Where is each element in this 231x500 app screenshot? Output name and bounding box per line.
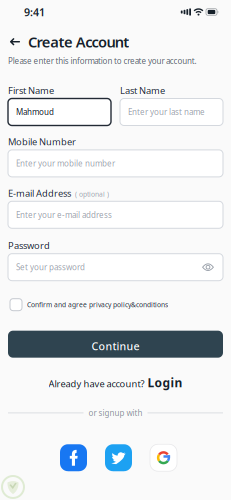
button[interactable]: Back [8,35,22,49]
staticText: 9:41 [24,5,45,19]
staticText: Confirm and agree privacy policy&conditi… [27,300,168,309]
staticText: Continue [91,339,139,353]
button[interactable]: Continue [8,331,223,358]
staticText: Please enter this information to create … [8,55,197,66]
staticText: Create Account [28,32,129,51]
staticText: E-mail Address [8,187,71,199]
staticText: Enter your last name [128,107,205,117]
staticText: Mobile Number [8,135,76,148]
button[interactable]: Show password [202,263,214,272]
staticText: or signup with [88,408,142,418]
staticText: Enter your mobile number [16,158,115,169]
staticText: Last Name [120,84,165,96]
staticText: Set your password [16,262,85,272]
button[interactable]: Sign up with Facebook [60,444,87,471]
button[interactable]: Confirm and agree privacy policy&conditi… [0,299,168,311]
staticText: Login [147,375,182,391]
staticText: Mahmoud [16,107,54,117]
staticText: Already have account? [48,377,144,390]
button[interactable]: Sign up with Twitter [105,444,132,471]
staticText: First Name [8,84,54,96]
staticText: Enter your e-mail address [16,209,112,220]
button[interactable]: Login [147,375,182,391]
staticText: ( optional ) [73,190,109,199]
button[interactable]: Sign up with Google [150,444,177,471]
staticText: Password [8,239,50,252]
